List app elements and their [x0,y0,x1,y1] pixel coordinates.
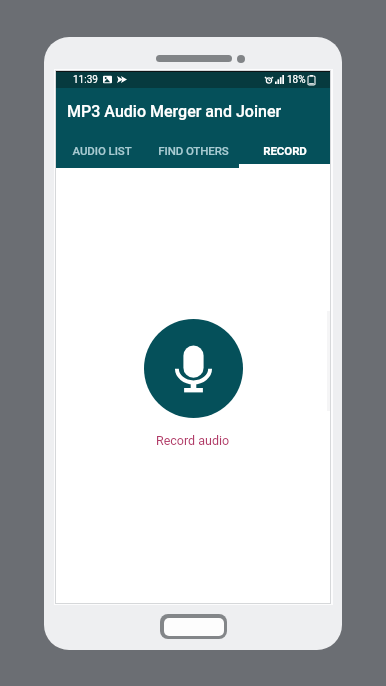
button[interactable]: Home [160,614,227,639]
button[interactable]: RECORD [239,136,330,168]
staticText: 18% [287,74,306,86]
button[interactable]: Record audio [156,433,230,448]
button[interactable]: Record audio [144,319,243,418]
button[interactable]: FIND OTHERS [148,136,239,168]
staticText: AUDIO LIST [72,144,132,157]
staticText: RECORD [263,144,307,157]
staticText: 11:39 [73,74,98,86]
staticText: MP3 Audio Merger and Joiner [67,102,282,121]
staticText: FIND OTHERS [158,144,229,157]
button[interactable]: AUDIO LIST [56,136,148,168]
